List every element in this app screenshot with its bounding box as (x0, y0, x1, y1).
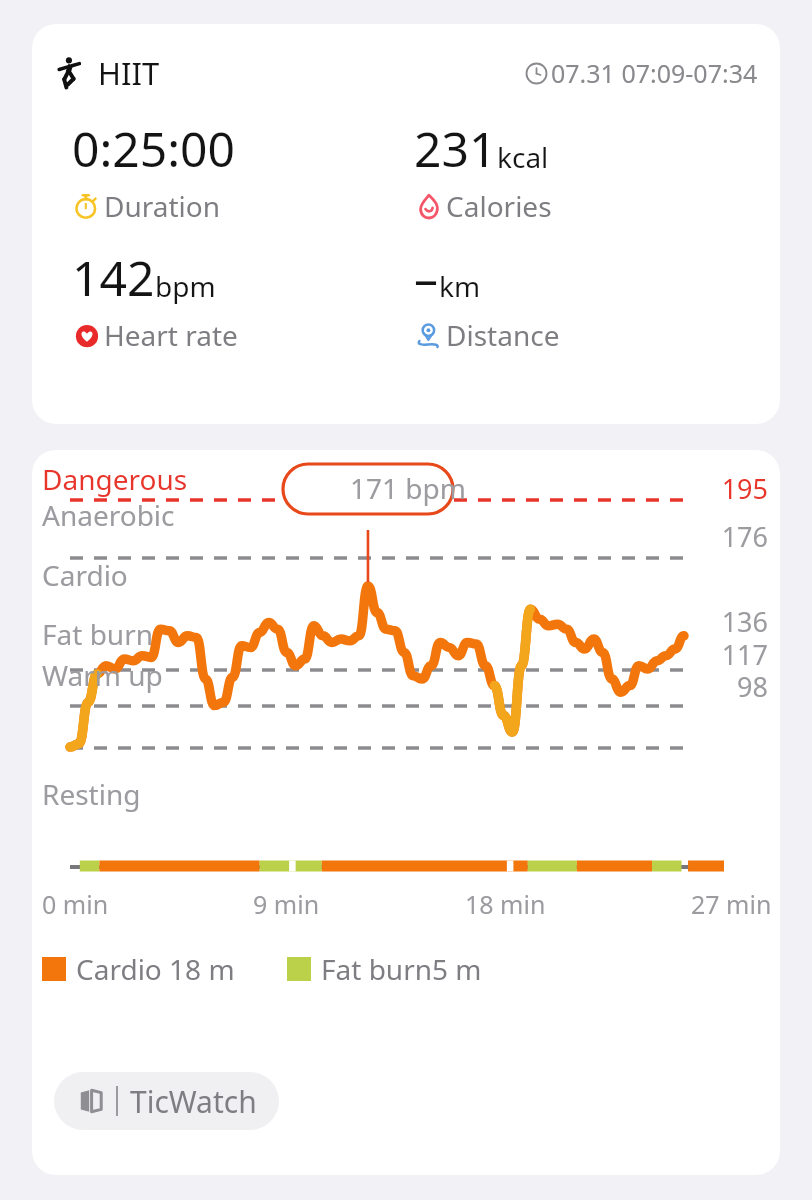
staticText: Distance (446, 316, 560, 354)
staticText: km (439, 267, 481, 305)
staticText: bpm (155, 267, 216, 305)
staticText: 142 (72, 245, 155, 310)
button[interactable]: TicWatch (54, 1072, 279, 1130)
staticText: TicWatch (130, 1081, 257, 1122)
staticText: 27 min (691, 887, 772, 921)
staticText: Duration (104, 187, 221, 225)
staticText: 231 (414, 116, 497, 181)
staticText: 136 (721, 603, 768, 640)
staticText: – (414, 245, 439, 310)
staticText: Anaerobic (42, 496, 175, 534)
staticText: 18 min (465, 887, 546, 921)
staticText: 0:25:00 (72, 116, 236, 181)
staticText: Cardio 18 m (76, 950, 235, 988)
staticText: Warm up (42, 656, 163, 694)
button[interactable]: Dangerous (32, 450, 780, 1175)
staticText: 195 (721, 470, 768, 507)
staticText: kcal (497, 138, 549, 176)
staticText: 0 min (42, 887, 109, 921)
staticText: Fat burn5 m (321, 950, 482, 988)
staticText: 176 (721, 518, 768, 555)
staticText: 07.31 07:09-07:34 (551, 56, 758, 90)
staticText: Resting (42, 775, 141, 813)
staticText: Calories (446, 187, 552, 225)
staticText: Heart rate (104, 316, 238, 354)
staticText: 98 (737, 668, 768, 705)
staticText: 171 bpm (350, 469, 466, 507)
button[interactable]: HIIT (32, 24, 780, 424)
staticText: Dangerous (42, 460, 188, 498)
staticText: 117 (721, 636, 768, 673)
staticText: HIIT (98, 52, 160, 94)
staticText: Fat burn (42, 615, 154, 653)
staticText: Cardio (42, 556, 128, 594)
staticText: 9 min (253, 887, 320, 921)
